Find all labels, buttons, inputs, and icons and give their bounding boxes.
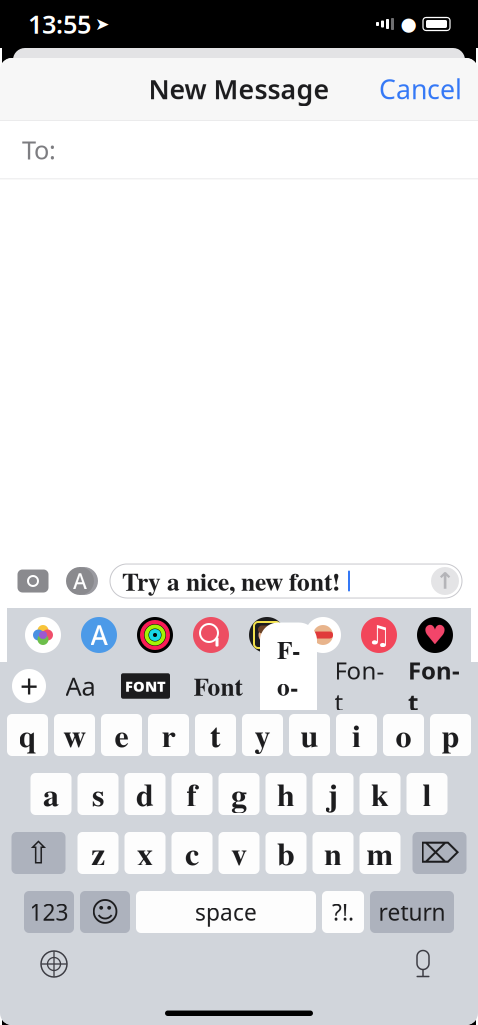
staticText: u <box>300 712 318 758</box>
staticText: To: <box>22 133 56 166</box>
button[interactable]: t <box>195 714 236 756</box>
button[interactable]: q <box>7 714 48 756</box>
button[interactable]: a <box>30 773 71 815</box>
button[interactable]: Memoji Stickers <box>305 617 341 653</box>
button[interactable]: Dictation <box>399 939 447 989</box>
button[interactable]: Add font <box>12 665 46 707</box>
button[interactable]: Emoji <box>80 891 130 933</box>
staticText: A <box>90 617 107 653</box>
staticText: 123 <box>29 897 68 927</box>
staticText: Try a nice, new font! <box>122 562 340 599</box>
button[interactable]: Font <box>402 647 466 725</box>
staticText: Font <box>193 667 242 704</box>
button[interactable]: App Store <box>62 567 98 595</box>
button[interactable]: d <box>124 773 165 815</box>
staticText: Cancel <box>379 71 462 107</box>
staticText: ♥ <box>423 620 447 650</box>
staticText: space <box>195 897 257 927</box>
staticText: ↑ <box>435 568 454 594</box>
button[interactable]: Shift <box>11 832 65 874</box>
button[interactable]: m <box>359 832 400 874</box>
button[interactable]: b <box>265 832 306 874</box>
button[interactable]: e <box>101 714 142 756</box>
staticText: Font <box>408 654 460 718</box>
button[interactable]: j <box>312 773 353 815</box>
staticText: i <box>352 712 361 758</box>
button[interactable]: Photos <box>25 617 61 653</box>
button[interactable]: u <box>289 714 330 756</box>
staticText: o <box>395 712 411 758</box>
staticText: p <box>441 712 459 758</box>
staticText: ⇧ <box>25 836 51 870</box>
button[interactable]: Font <box>185 660 250 711</box>
staticText: A <box>73 567 87 595</box>
button[interactable]: App Store <box>81 617 117 653</box>
staticText: y <box>254 712 270 758</box>
staticText: return <box>378 897 445 927</box>
button[interactable]: Aa <box>55 662 105 710</box>
button[interactable]: r <box>148 714 189 756</box>
staticText: 13:55 <box>28 7 91 41</box>
button[interactable]: Music <box>361 617 397 653</box>
button[interactable]: FONT <box>115 666 176 706</box>
button[interactable]: h <box>265 773 306 815</box>
button[interactable]: w <box>54 714 95 756</box>
button[interactable]: Activity <box>137 617 173 653</box>
button[interactable]: Cancel <box>363 61 478 117</box>
staticText: q <box>18 712 36 758</box>
button[interactable]: Return <box>370 891 454 933</box>
button[interactable]: Font <box>326 647 392 725</box>
staticText: ♫ <box>367 620 391 650</box>
button[interactable]: y <box>242 714 283 756</box>
staticText: f <box>186 771 197 817</box>
button[interactable]: n <box>312 832 353 874</box>
staticText: e <box>114 712 128 758</box>
button[interactable]: Next keyboard <box>31 941 77 987</box>
staticText: t <box>210 712 221 758</box>
button[interactable]: Delete <box>412 832 466 874</box>
button[interactable]: Memoji <box>249 617 285 653</box>
button[interactable]: Punctuation <box>322 891 364 933</box>
button[interactable]: Font <box>260 623 317 749</box>
button[interactable]: l <box>406 773 447 815</box>
button[interactable]: x <box>124 832 165 874</box>
button[interactable]: c <box>171 832 212 874</box>
staticText: New Message <box>148 71 329 107</box>
button[interactable]: Health <box>417 617 453 653</box>
staticText: ➤ <box>95 14 110 34</box>
staticText: n <box>324 830 342 876</box>
button[interactable]: space <box>136 891 316 933</box>
button[interactable]: Digital Touch <box>193 617 229 653</box>
button[interactable]: p <box>430 714 471 756</box>
button[interactable]: i <box>336 714 377 756</box>
staticText: h <box>277 771 295 817</box>
staticText: g <box>231 771 247 817</box>
staticText: ⌦ <box>419 837 459 869</box>
button[interactable]: z <box>77 832 118 874</box>
button[interactable]: Camera <box>16 567 50 595</box>
staticText: ☺ <box>90 896 119 928</box>
button[interactable]: v <box>218 832 259 874</box>
staticText: v <box>231 830 247 876</box>
staticText: a <box>43 771 59 817</box>
staticText: d <box>136 771 154 817</box>
staticText: m <box>366 830 393 876</box>
staticText: l <box>422 771 431 817</box>
staticText: k <box>371 771 389 817</box>
button[interactable]: s <box>77 773 118 815</box>
staticText: ?!. <box>332 897 354 927</box>
button[interactable]: f <box>171 773 212 815</box>
staticText: r <box>161 712 175 758</box>
button[interactable]: g <box>218 773 259 815</box>
button[interactable]: o <box>383 714 424 756</box>
staticText: Font <box>277 631 300 741</box>
button[interactable]: Send <box>431 567 459 595</box>
staticText: s <box>92 771 104 817</box>
staticText: x <box>137 830 153 876</box>
button[interactable]: k <box>359 773 400 815</box>
staticText: z <box>91 830 105 876</box>
staticText: ● <box>400 13 416 35</box>
staticText: Font <box>334 654 384 718</box>
button[interactable]: Numbers <box>24 891 74 933</box>
